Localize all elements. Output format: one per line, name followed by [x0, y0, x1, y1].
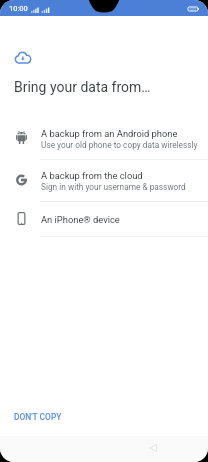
button[interactable]: A backup from an Android phone: [0, 117, 208, 159]
other: Cloud download: [15, 52, 31, 63]
staticText: A backup from an Android phone: [41, 128, 178, 139]
staticText: A backup from the cloud: [41, 170, 143, 181]
button[interactable]: A backup from the cloud: [0, 160, 208, 201]
button[interactable]: DON'T COPY: [7, 406, 69, 428]
staticText: Bring your data from…: [14, 79, 151, 95]
button[interactable]: An iPhone® device: [0, 202, 208, 236]
staticText: Sign in with your username & password: [41, 182, 186, 192]
staticText: An iPhone® device: [41, 214, 120, 225]
staticText: 10:00: [9, 4, 28, 13]
staticText: Use your old phone to copy data wireless…: [41, 140, 198, 150]
staticText: DON'T COPY: [14, 412, 62, 422]
other: Back: [149, 444, 157, 452]
